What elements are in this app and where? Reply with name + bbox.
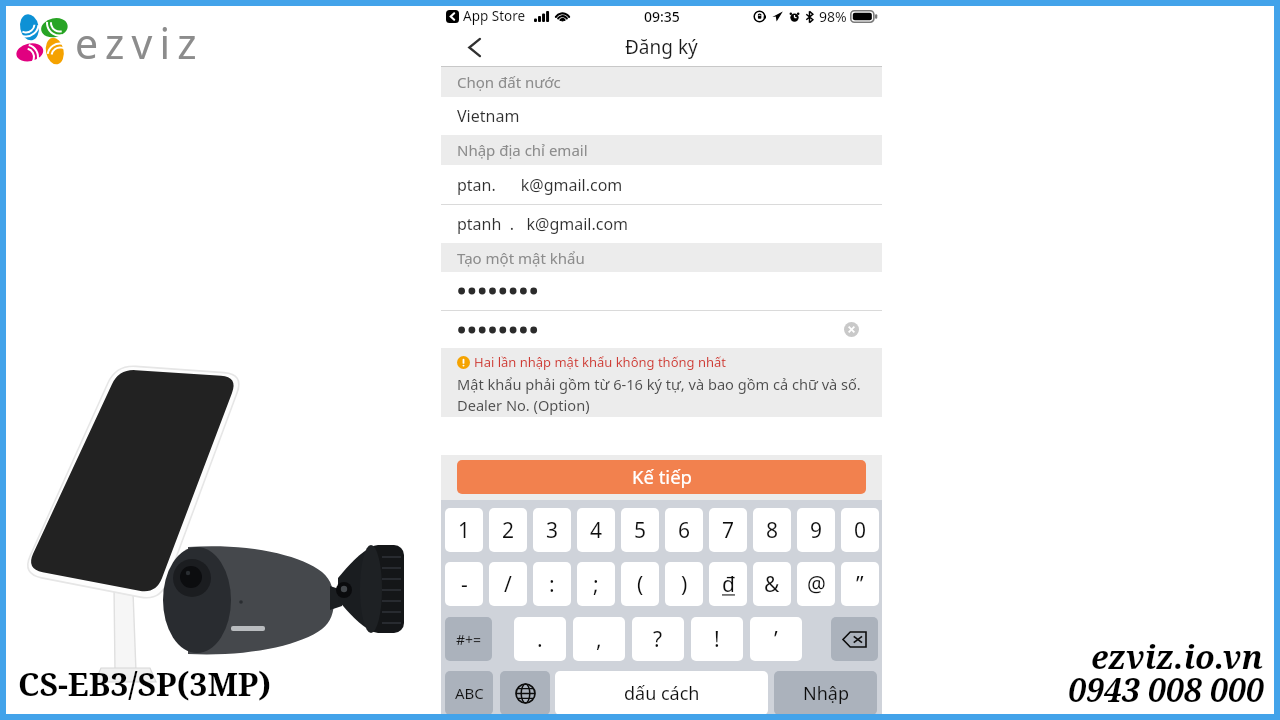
button[interactable]: 8 [753, 508, 791, 552]
button[interactable]: 2 [489, 508, 527, 552]
staticText: 3 [546, 516, 559, 545]
staticText: 4 [590, 516, 603, 545]
staticText: Nhập địa chỉ email [457, 140, 588, 160]
button[interactable]: 0 [841, 508, 879, 552]
button[interactable]: ( [621, 562, 659, 606]
button[interactable]: ? [632, 617, 684, 661]
button[interactable]: , [573, 617, 625, 661]
staticText: 8 [766, 516, 779, 545]
staticText: ezviz.io.vn [1091, 635, 1264, 679]
staticText: ptanh . k@gmail.com [457, 213, 629, 235]
staticText: . [537, 625, 543, 654]
staticText: Mật khẩu phải gồm từ 6-16 ký tự, và bao … [457, 374, 861, 394]
button[interactable]: Clear password [844, 322, 859, 337]
button[interactable]: dấu cách [555, 671, 768, 715]
staticText: & [764, 570, 780, 599]
staticText: 5 [634, 516, 647, 545]
button[interactable]: Back [455, 28, 493, 66]
staticText: #+= [456, 630, 482, 649]
button[interactable]: ptanh . k@gmail.com [441, 205, 882, 243]
button[interactable]: Backspace [831, 617, 878, 661]
button[interactable]: #+= [445, 617, 492, 661]
button[interactable]: @ [797, 562, 835, 606]
staticText: 0943 008 000 [1068, 668, 1264, 712]
button[interactable]: 3 [533, 508, 571, 552]
staticText: Nhập [803, 681, 849, 706]
staticText: , [596, 625, 602, 654]
button[interactable]: : [533, 562, 571, 606]
staticText: @ [807, 570, 826, 599]
button[interactable]: Change keyboard language [500, 671, 550, 715]
button[interactable]: - [445, 562, 483, 606]
button[interactable]: . [514, 617, 566, 661]
button[interactable]: ! [691, 617, 743, 661]
staticText: ezviz [75, 15, 204, 71]
staticText: Kế tiếp [632, 464, 692, 489]
button[interactable]: Nhập [774, 671, 877, 715]
staticText: dấu cách [624, 681, 700, 706]
staticText: 2 [502, 516, 515, 545]
staticText: - [461, 570, 468, 599]
button[interactable]: ’ [750, 617, 802, 661]
staticText: 09:35 [644, 7, 680, 26]
button[interactable]: 1 [445, 508, 483, 552]
button[interactable]: 7 [709, 508, 747, 552]
button[interactable]: Kế tiếp [457, 460, 866, 494]
staticText: 6 [678, 516, 691, 545]
staticText: 98% [819, 7, 847, 26]
button[interactable]: 4 [577, 508, 615, 552]
staticText: ( [637, 570, 644, 599]
button[interactable]: đ [709, 562, 747, 606]
button[interactable]: & [753, 562, 791, 606]
staticText: Chọn đất nước [457, 72, 561, 92]
staticText: Đăng ký [625, 34, 698, 60]
button[interactable]: / [489, 562, 527, 606]
button[interactable]: 6 [665, 508, 703, 552]
button[interactable]: 5 [621, 508, 659, 552]
staticText: ” [856, 570, 864, 599]
staticText: 1 [458, 516, 471, 545]
button[interactable]: ” [841, 562, 879, 606]
staticText: ’ [774, 625, 778, 654]
staticText: Hai lần nhập mật khẩu không thống nhất [474, 353, 726, 371]
staticText: : [549, 570, 555, 599]
button[interactable]: ABC [445, 671, 493, 715]
staticText: / [504, 570, 512, 599]
button[interactable]: Clear password [441, 311, 882, 348]
staticText: Vietnam [457, 105, 520, 127]
staticText: 0 [854, 516, 867, 545]
staticText: ) [681, 570, 688, 599]
staticText: đ [722, 570, 735, 599]
staticText: ABC [455, 683, 484, 703]
staticText: 9 [810, 516, 823, 545]
button[interactable]: Vietnam [441, 97, 882, 135]
button[interactable]: 9 [797, 508, 835, 552]
button[interactable]: ptan. k@gmail.com [441, 165, 882, 204]
staticText: ? [653, 625, 663, 654]
staticText: CS-EB3/SP(3MP) [18, 662, 272, 706]
staticText: ! [714, 625, 720, 654]
button[interactable]: ; [577, 562, 615, 606]
button[interactable]: ) [665, 562, 703, 606]
staticText: ; [593, 570, 599, 599]
staticText: App Store [463, 7, 526, 25]
staticText: 7 [722, 516, 735, 545]
button[interactable] [441, 272, 882, 310]
staticText: Tạo một mật khẩu [457, 248, 585, 268]
staticText: ptan. k@gmail.com [457, 174, 623, 196]
staticText: Dealer No. (Option) [457, 395, 590, 415]
